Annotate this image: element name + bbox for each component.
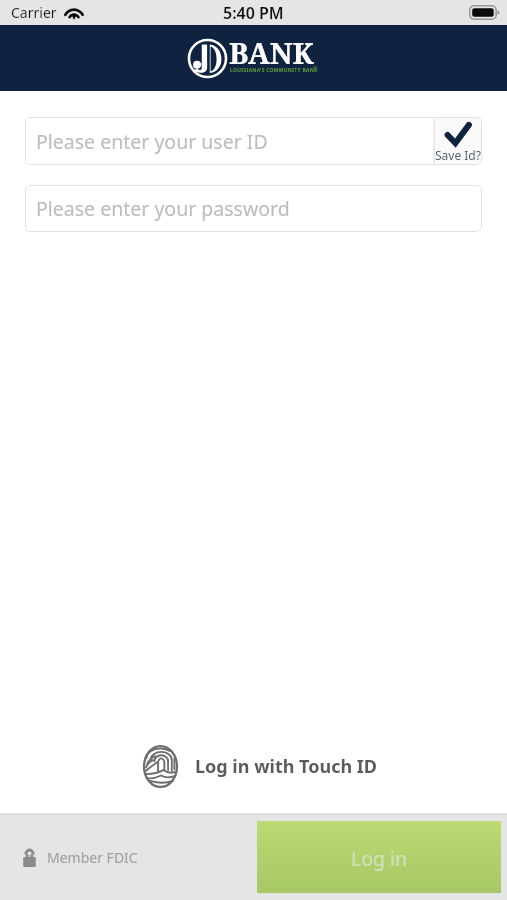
staticText: Member FDIC bbox=[47, 848, 138, 867]
staticText: Log in bbox=[351, 845, 408, 872]
button[interactable]: Log in bbox=[257, 821, 501, 893]
button[interactable]: Log in with Touch ID bbox=[142, 744, 378, 789]
staticText: Save Id? bbox=[435, 147, 481, 163]
button[interactable]: Save Id? checkbox, checked bbox=[434, 117, 482, 165]
staticText: ™ bbox=[313, 65, 317, 72]
staticText: LOUISIANA'S COMMUNITY BANK bbox=[230, 67, 318, 74]
staticText: Please enter your password bbox=[36, 195, 290, 222]
button[interactable]: Member FDIC bbox=[23, 848, 138, 867]
staticText: Carrier bbox=[11, 3, 57, 22]
button[interactable]: Please enter your password bbox=[25, 185, 482, 232]
staticText: 5:40 PM bbox=[223, 2, 284, 24]
button[interactable]: Please enter your user ID bbox=[25, 117, 434, 165]
staticText: Please enter your user ID bbox=[36, 128, 268, 155]
staticText: BANK bbox=[229, 33, 314, 72]
staticText: Log in with Touch ID bbox=[195, 754, 378, 779]
